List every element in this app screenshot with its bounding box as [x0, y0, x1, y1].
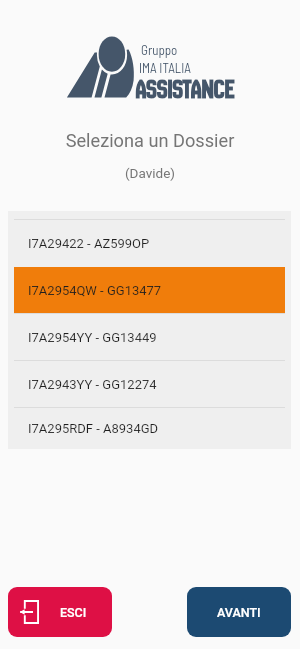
staticText: Seleziona un Dossier: [0, 130, 300, 151]
button[interactable]: I7A2954YY - GG13449: [14, 314, 285, 360]
button[interactable]: I7A2954QW - GG13477: [14, 267, 285, 313]
button[interactable]: I7A2943YY - GG12274: [14, 361, 285, 407]
staticText: I7A29422 - AZ599OP: [28, 236, 150, 251]
staticText: I7A295RDF - A8934GD: [28, 421, 159, 436]
staticText: I7A2943YY - GG12274: [28, 377, 157, 392]
staticText: I7A2954QW - GG13477: [28, 283, 162, 298]
staticText: IMA ITALIA: [139, 60, 191, 76]
button[interactable]: AVANTI: [187, 587, 291, 637]
staticText: I7A2954YY - GG13449: [28, 330, 157, 345]
staticText: ESCI: [60, 605, 87, 620]
staticText: AVANTI: [217, 605, 261, 620]
staticText: Gruppo: [141, 42, 178, 58]
button[interactable]: Esci: [8, 587, 112, 637]
button[interactable]: I7A295RDF - A8934GD: [14, 408, 285, 449]
staticText: (Davide): [0, 165, 300, 181]
other: Esci: [19, 600, 39, 624]
button[interactable]: I7A29422 - AZ599OP: [14, 220, 285, 266]
staticText: ASSISTANCE: [136, 73, 235, 105]
